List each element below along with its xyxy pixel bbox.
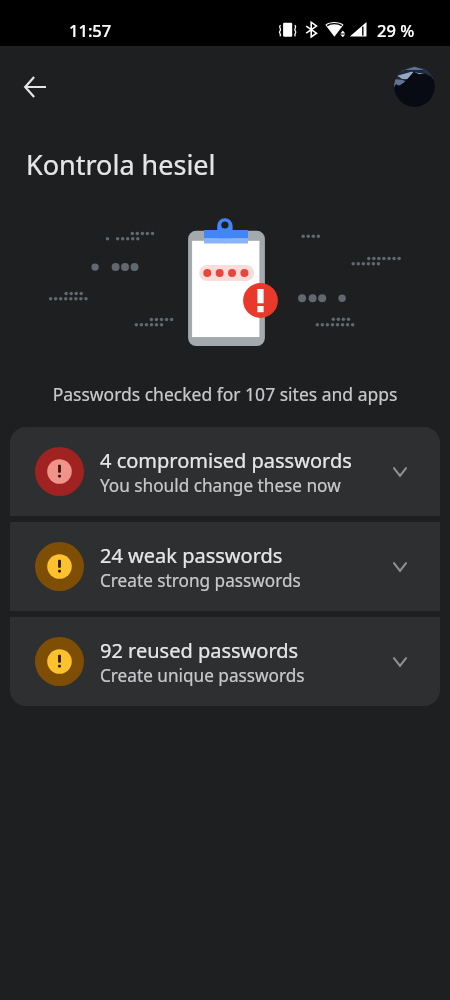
button[interactable]: 4 compromised passwords bbox=[10, 427, 440, 516]
staticText: 11:57 bbox=[69, 19, 112, 41]
button[interactable]: 92 reused passwords bbox=[10, 617, 440, 706]
button[interactable]: Expand bbox=[380, 642, 420, 682]
staticText: Create unique passwords bbox=[100, 664, 305, 687]
button[interactable]: Back bbox=[11, 63, 59, 111]
button[interactable]: Account bbox=[394, 66, 435, 107]
staticText: 92 reused passwords bbox=[100, 637, 299, 664]
button[interactable]: Expand bbox=[380, 547, 420, 587]
staticText: You should change these now bbox=[100, 474, 341, 497]
button[interactable]: Expand bbox=[380, 452, 420, 492]
staticText: 29 % bbox=[377, 19, 415, 41]
staticText: Kontrola hesiel bbox=[26, 146, 216, 183]
staticText: Passwords checked for 107 sites and apps bbox=[0, 382, 450, 406]
staticText: Create strong passwords bbox=[100, 569, 301, 592]
button[interactable]: 24 weak passwords bbox=[10, 522, 440, 611]
staticText: 4 compromised passwords bbox=[100, 447, 352, 474]
staticText: 24 weak passwords bbox=[100, 542, 283, 569]
